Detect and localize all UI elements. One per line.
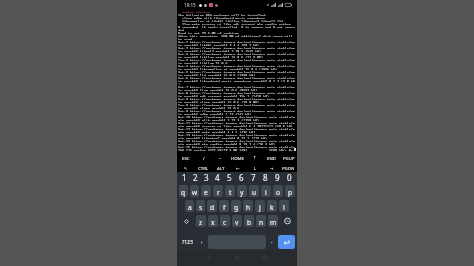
staticText: Get:7 https://packages.termux.dev/apt/te…: [178, 85, 295, 88]
button[interactable]: a: [185, 200, 194, 212]
staticText: 25% [15 python 4372 kB/18.5 MB 24%]: [178, 148, 248, 151]
staticText: q: [181, 188, 186, 197]
button[interactable]: Backspace: [280, 215, 295, 227]
staticText: ain aarch64 glib aarch64 2.74.3 (1250 kB…: [178, 118, 260, 121]
staticText: y: [240, 188, 244, 197]
button[interactable]: b: [244, 215, 254, 227]
staticText: CTRL: [198, 165, 209, 171]
button[interactable]: ALT: [212, 164, 229, 172]
button[interactable]: l: [279, 200, 289, 212]
button[interactable]: CTRL: [195, 164, 212, 172]
button[interactable]: PGUP: [280, 153, 297, 162]
button[interactable]: o: [273, 185, 283, 197]
button[interactable]: n: [256, 215, 266, 227]
button[interactable]: j: [255, 200, 265, 212]
button[interactable]: ?123: [179, 235, 196, 249]
button[interactable]: Home: [231, 252, 243, 264]
staticText: Get:1 https://packages.termux.dev/apt/te…: [178, 40, 295, 43]
staticText: 7: [251, 172, 256, 183]
staticText: in aarch64 clang aarch64 15.0.6 (20.0 MB…: [178, 100, 260, 103]
button[interactable]: t: [225, 185, 235, 197]
button[interactable]: w: [190, 185, 199, 197]
button[interactable]: ,: [196, 235, 208, 249]
button[interactable]: PGDN: [280, 164, 297, 172]
button[interactable]: d: [207, 200, 217, 212]
button[interactable]: q: [179, 185, 188, 197]
button[interactable]: k: [267, 200, 277, 212]
staticText: in aarch64 clang aarch64 15.0.6: [178, 106, 240, 109]
button[interactable]: 4: [212, 172, 223, 185]
button[interactable]: END: [263, 153, 280, 162]
button[interactable]: −: [212, 153, 229, 162]
button[interactable]: 9: [271, 172, 283, 185]
button[interactable]: v: [232, 215, 242, 227]
button[interactable]: Shift: [179, 215, 194, 227]
button[interactable]: .: [266, 235, 278, 249]
button[interactable]: ↓: [246, 164, 263, 172]
button[interactable]: c: [220, 215, 230, 227]
staticText: The following NEW packages will be insta…: [178, 13, 268, 16]
staticText: u: [252, 188, 257, 197]
staticText: 6: [239, 172, 244, 183]
button[interactable]: u: [249, 185, 259, 197]
staticText: in aarch64 libcompiler-rt aarch64 15.0.6…: [178, 67, 277, 70]
staticText: j: [259, 203, 261, 212]
staticText: m: [270, 218, 277, 227]
button[interactable]: r: [213, 185, 223, 197]
button[interactable]: HOME: [229, 153, 246, 162]
staticText: ,: [201, 237, 203, 245]
staticText: d: [210, 203, 215, 212]
button[interactable]: Enter: [278, 235, 295, 249]
button[interactable]: 0: [283, 172, 295, 185]
button[interactable]: x: [208, 215, 218, 227]
button[interactable]: h: [243, 200, 253, 212]
button[interactable]: p: [285, 185, 295, 197]
button[interactable]: e: [201, 185, 211, 197]
staticText: i: [265, 188, 267, 197]
staticText: .: [271, 237, 273, 245]
staticText: ALT: [217, 165, 225, 171]
staticText: 4: [215, 172, 220, 183]
button[interactable]: 8: [259, 172, 271, 185]
staticText: Get:3 https://packages.termux.dev/apt/te…: [178, 52, 295, 55]
staticText: Get:6 https://packages.termux.dev/apt/te…: [178, 76, 295, 79]
staticText: ain aarch64 libngtcp2 aarch64 0.13.1 (11…: [178, 136, 268, 139]
staticText: 19:15: [184, 2, 196, 8]
staticText: 3: [204, 172, 209, 183]
button[interactable]: Recents: [259, 252, 271, 264]
button[interactable]: ↖: [177, 164, 195, 172]
button[interactable]: m: [268, 215, 278, 227]
staticText: llvm make ncurses-ui-libs ndk-sysroot pk…: [178, 22, 291, 25]
button[interactable]: g: [231, 200, 241, 212]
button[interactable]: ↑: [246, 153, 263, 162]
button[interactable]: 3: [201, 172, 212, 185]
staticText: a: [188, 203, 192, 212]
staticText: PGUP: [283, 155, 295, 161]
button[interactable]: 6: [235, 172, 247, 185]
staticText: 1: [182, 172, 187, 183]
staticText: l: [283, 203, 285, 212]
staticText: 5: [227, 172, 232, 183]
button[interactable]: ←: [229, 164, 246, 172]
staticText: in aarch64 libffi aarch64 3.4.4 (50.7 kB…: [178, 43, 260, 46]
button[interactable]: i: [261, 185, 271, 197]
button[interactable]: →: [263, 164, 280, 172]
button[interactable]: ESC: [177, 153, 195, 162]
button[interactable]: 1: [179, 172, 190, 185]
button[interactable]: 5: [223, 172, 235, 185]
button[interactable]: y: [237, 185, 247, 197]
button[interactable]: f: [219, 200, 229, 212]
button[interactable]: z: [196, 215, 206, 227]
button[interactable]: 2: [190, 172, 201, 185]
button[interactable]: 7: [247, 172, 259, 185]
staticText: PGDN: [282, 165, 295, 171]
button[interactable]: s: [196, 200, 205, 212]
button[interactable]: /: [195, 153, 212, 162]
staticText: After this operation, 998 MB of addition…: [178, 34, 293, 37]
staticText: in aarch64 lld aarch64 15.0.6 (1988 kB): [178, 73, 256, 76]
staticText: in aarch64 ndk-sysroot aarch64 25b-2 (14…: [178, 94, 269, 97]
staticText: ain aarch64 ncurses-ui-libs aarch64 6.4.…: [178, 124, 293, 127]
staticText: x: [211, 218, 215, 227]
